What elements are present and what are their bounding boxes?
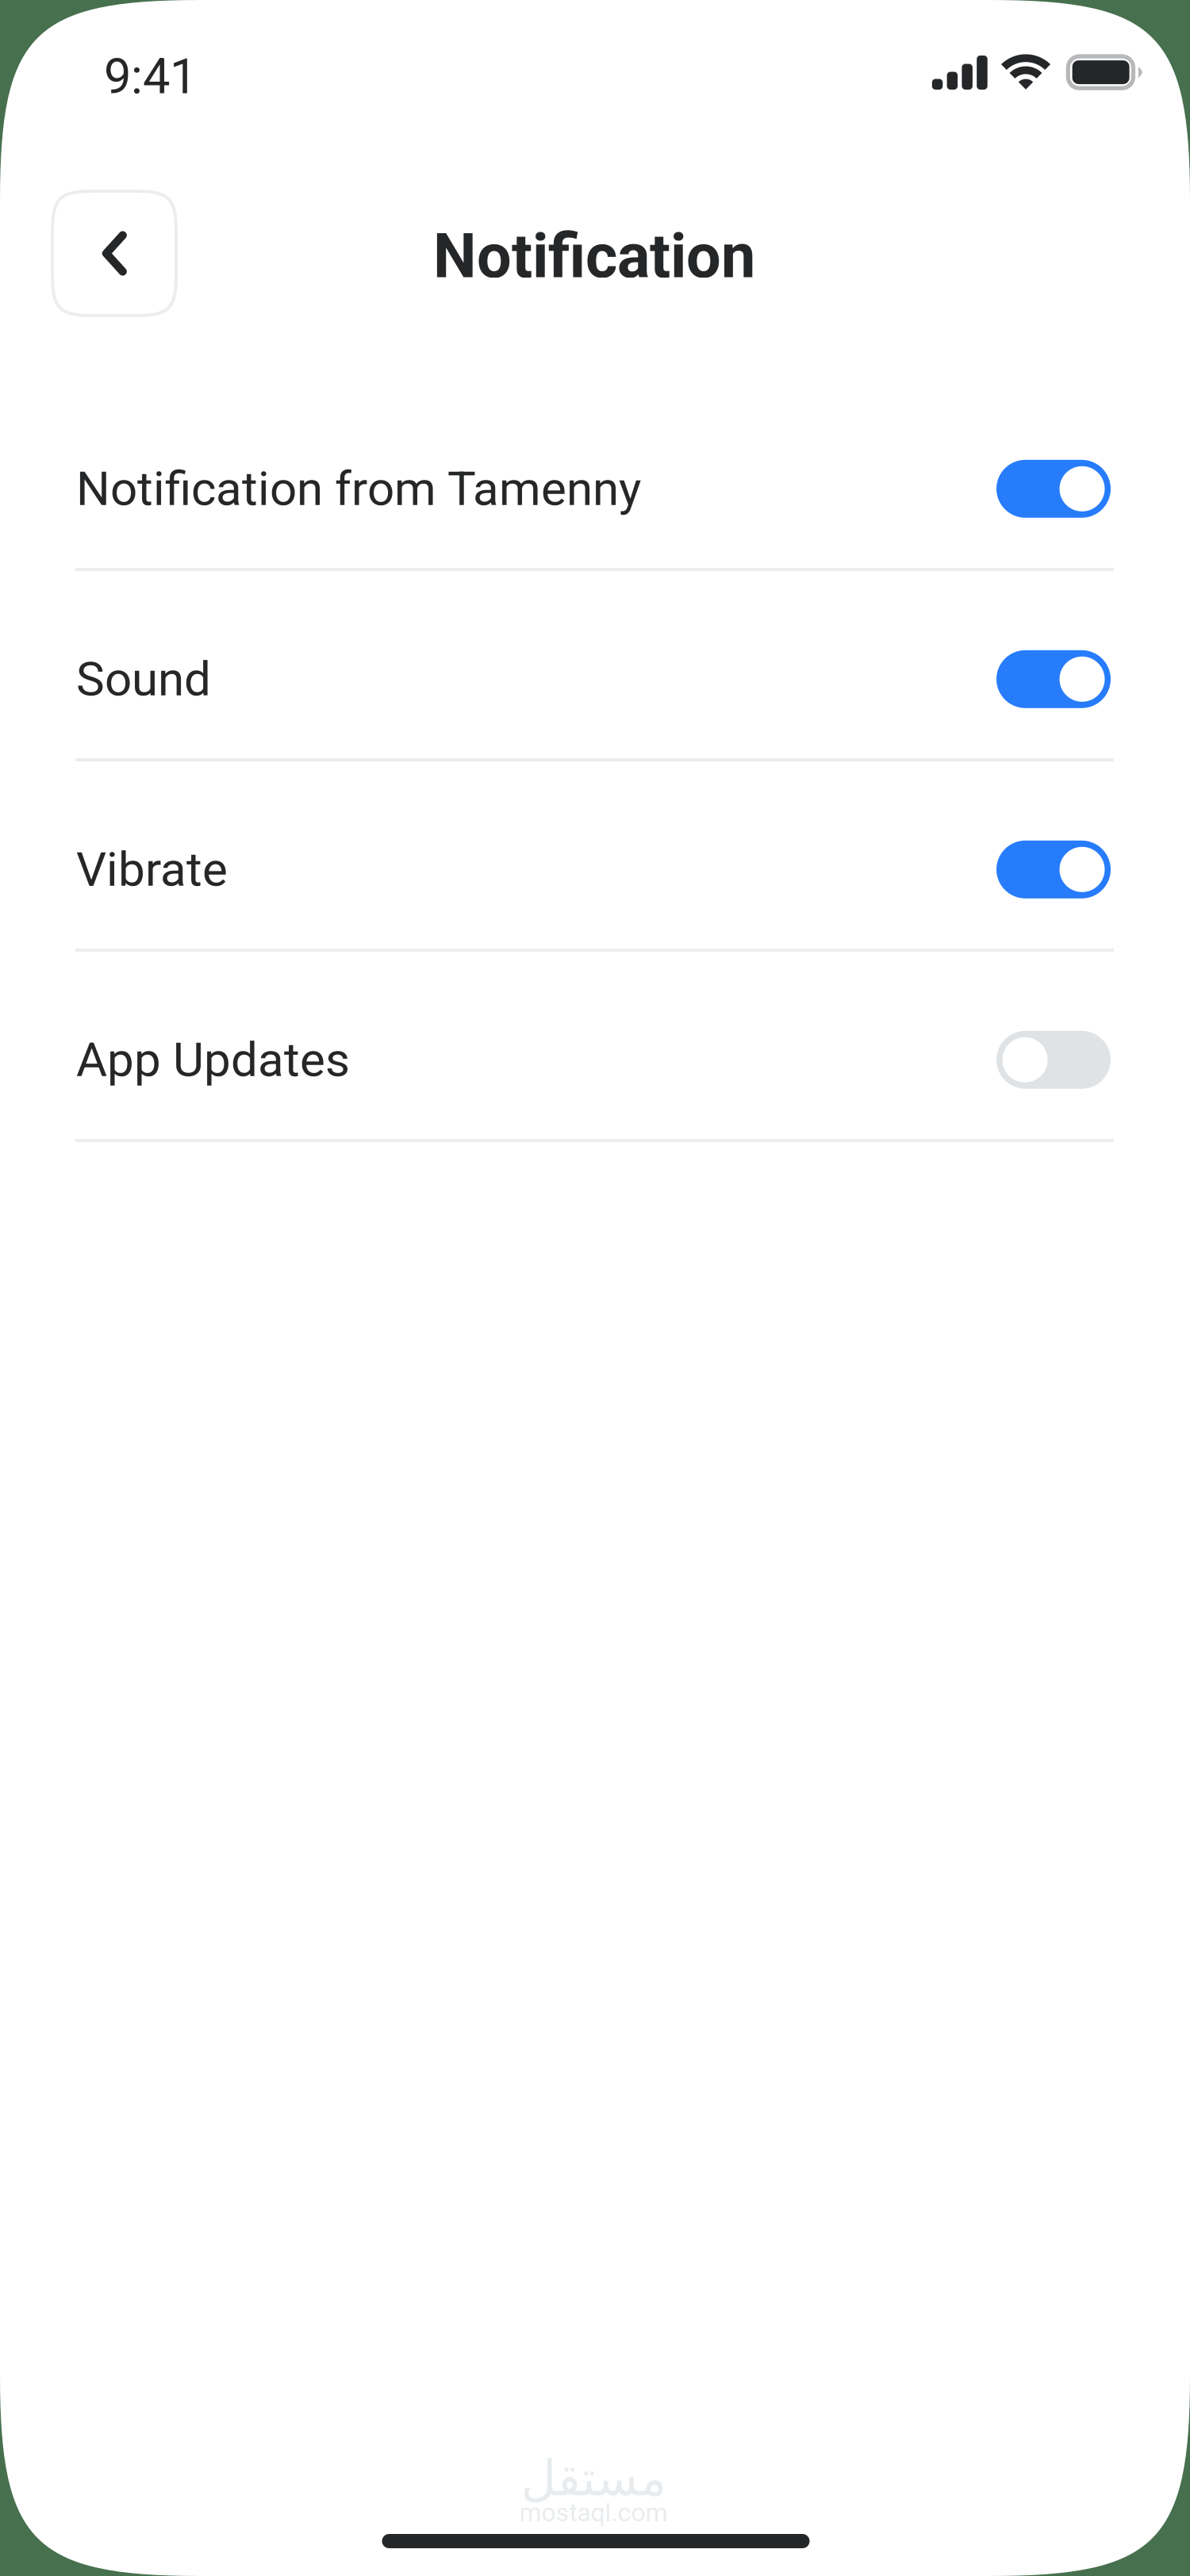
staticText: Sound <box>76 651 211 707</box>
staticText: مستقل <box>520 2450 666 2507</box>
staticText: App Updates <box>76 1032 350 1088</box>
button[interactable]: Back <box>51 190 178 317</box>
button[interactable]: Notification from Tamenny <box>76 408 1111 569</box>
staticText: Notification <box>433 220 755 292</box>
staticText: Vibrate <box>76 842 228 897</box>
button[interactable]: Vibrate <box>76 789 1111 950</box>
button[interactable]: App Updates <box>76 979 1111 1140</box>
staticText: Notification from Tamenny <box>76 461 641 517</box>
staticText: 9:41 <box>104 48 197 105</box>
button[interactable]: Sound <box>76 599 1111 760</box>
staticText: mostaql.com <box>519 2498 668 2527</box>
